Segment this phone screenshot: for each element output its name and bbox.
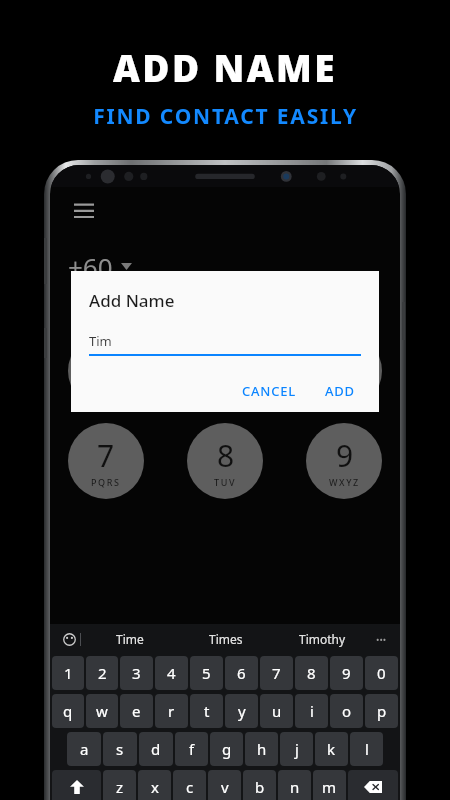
button[interactable]: 1 <box>52 656 84 690</box>
staticText: 9 <box>342 663 351 683</box>
button[interactable]: 7 <box>260 656 293 690</box>
button[interactable]: 3 <box>120 656 153 690</box>
button[interactable]: Times <box>178 624 274 654</box>
staticText: Times <box>209 631 243 647</box>
button[interactable]: CANCEL <box>236 378 303 404</box>
staticText: 2 <box>98 663 107 683</box>
button[interactable]: o <box>330 694 363 728</box>
button[interactable]: t <box>190 694 223 728</box>
button[interactable]: h <box>245 732 278 766</box>
staticText: 8 <box>307 663 316 683</box>
staticText: f <box>189 739 195 759</box>
staticText: Tim <box>89 332 112 350</box>
button[interactable]: n <box>278 770 311 800</box>
staticText: 1 <box>64 663 73 683</box>
staticText: Add Name <box>89 289 175 312</box>
button[interactable]: 9 <box>330 656 363 690</box>
staticText: Timothy <box>299 631 346 647</box>
staticText: w <box>96 701 108 721</box>
button[interactable]: j <box>280 732 313 766</box>
button[interactable]: p <box>365 694 398 728</box>
button[interactable]: y <box>225 694 258 728</box>
staticText: FIND CONTACT EASILY <box>93 102 358 131</box>
button[interactable]: 4 <box>68 333 144 409</box>
button[interactable]: x <box>138 770 171 800</box>
button[interactable]: e <box>120 694 153 728</box>
staticText: l <box>365 739 369 759</box>
button[interactable]: q <box>52 694 84 728</box>
button[interactable]: 8 <box>295 656 328 690</box>
button[interactable]: 5 <box>187 333 263 409</box>
staticText: ADD NAME <box>113 42 337 92</box>
button[interactable]: u <box>260 694 293 728</box>
button[interactable]: z <box>103 770 136 800</box>
button[interactable]: Emoji <box>58 628 80 650</box>
button[interactable]: 8 <box>187 423 263 499</box>
button[interactable]: More <box>370 633 392 645</box>
button[interactable]: 4 <box>155 656 188 690</box>
staticText: j <box>295 739 299 759</box>
button[interactable]: s <box>103 732 137 766</box>
button[interactable]: Menu <box>66 193 102 229</box>
staticText: m <box>322 777 337 797</box>
button[interactable]: 6 <box>225 656 258 690</box>
button[interactable]: k <box>315 732 348 766</box>
staticText: c <box>186 777 194 797</box>
staticText: 5 <box>202 663 211 683</box>
button[interactable]: Time <box>81 624 178 654</box>
button[interactable]: r <box>155 694 188 728</box>
staticText: 0 <box>377 663 386 683</box>
staticText: n <box>290 777 300 797</box>
button[interactable]: l <box>350 732 383 766</box>
button[interactable]: +60 <box>68 249 132 284</box>
button[interactable]: c <box>173 770 206 800</box>
staticText: +60 <box>68 249 113 284</box>
staticText: 6 <box>335 345 353 386</box>
button[interactable]: g <box>210 732 243 766</box>
staticText: 7 <box>97 435 115 476</box>
staticText: i <box>310 701 314 721</box>
staticText: 3 <box>132 663 141 683</box>
staticText: t <box>204 701 210 721</box>
staticText: MNO <box>330 386 358 398</box>
staticText: 5 <box>216 345 234 386</box>
button[interactable]: b <box>243 770 276 800</box>
staticText: h <box>257 739 267 759</box>
staticText: 6 <box>237 663 246 683</box>
staticText: r <box>168 701 175 721</box>
staticText: o <box>342 701 352 721</box>
staticText: u <box>272 701 282 721</box>
staticText: g <box>222 739 232 759</box>
button[interactable]: v <box>208 770 241 800</box>
button[interactable]: a <box>67 732 101 766</box>
staticText: b <box>255 777 265 797</box>
button[interactable]: 2 <box>86 656 118 690</box>
staticText: TUV <box>214 476 237 488</box>
button[interactable]: 9 <box>306 423 382 499</box>
staticText: 9 <box>336 435 354 476</box>
button[interactable]: 5 <box>190 656 223 690</box>
button[interactable]: m <box>313 770 346 800</box>
button[interactable]: 6 <box>306 333 382 409</box>
button[interactable]: Add Name <box>122 296 192 315</box>
button[interactable]: ADD <box>319 378 361 404</box>
staticText: Time <box>116 631 144 647</box>
button[interactable]: i <box>295 694 328 728</box>
staticText: z <box>116 777 124 797</box>
button[interactable]: f <box>175 732 208 766</box>
staticText: e <box>132 701 141 721</box>
staticText: y <box>238 701 246 721</box>
button[interactable]: Shift <box>52 770 101 800</box>
button[interactable]: 7 <box>68 423 144 499</box>
button[interactable]: Backspace <box>348 770 398 800</box>
staticText: 4 <box>167 663 176 683</box>
button[interactable]: w <box>86 694 118 728</box>
staticText: v <box>221 777 229 797</box>
button[interactable]: 0 <box>365 656 398 690</box>
button[interactable]: Timothy <box>274 624 370 654</box>
button[interactable]: d <box>139 732 173 766</box>
staticText: s <box>116 739 124 759</box>
